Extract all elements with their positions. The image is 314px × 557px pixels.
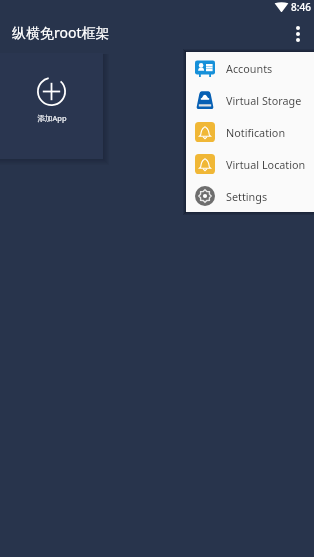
staticText: 纵横免root框架: [12, 23, 110, 42]
staticText: Accounts: [226, 61, 273, 76]
button[interactable]: Virtual Storage: [186, 84, 314, 116]
button[interactable]: Settings: [186, 180, 314, 212]
button[interactable]: More options: [280, 16, 314, 52]
staticText: Virtual Storage: [226, 93, 302, 108]
staticText: Settings: [226, 189, 268, 204]
button[interactable]: 添加App: [0, 53, 103, 159]
staticText: Notification: [226, 125, 286, 140]
staticText: 8:46: [291, 0, 311, 14]
button[interactable]: Virtual Location: [186, 148, 314, 180]
button[interactable]: Accounts: [186, 52, 314, 84]
staticText: 添加App: [37, 113, 67, 123]
button[interactable]: Notification: [186, 116, 314, 148]
staticText: Virtual Location: [226, 157, 306, 172]
